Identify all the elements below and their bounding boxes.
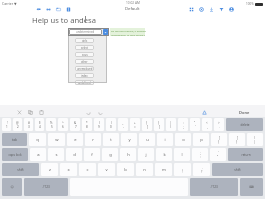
button[interactable]: return [228,148,263,161]
button[interactable]: b [117,163,134,176]
staticText: caps lock [8,153,22,157]
button[interactable]: Expand list [103,29,108,35]
staticText: other [81,60,88,64]
button[interactable]: ; [192,148,208,161]
button[interactable]: x [60,163,77,176]
button[interactable]: Copy [27,109,34,116]
button[interactable]: unemployed [75,66,94,71]
button[interactable]: _ [118,118,128,131]
button[interactable]: p [193,133,209,146]
button[interactable]: + [130,118,140,131]
staticText: r [92,137,94,143]
button[interactable]: Paste [38,109,45,116]
button[interactable]: u [139,133,155,146]
button[interactable]: Bookmarks [65,6,72,13]
button[interactable]: ^ [58,118,68,131]
staticText: d [73,152,76,158]
button[interactable]: Done [239,110,250,115]
button[interactable]: z [41,163,58,176]
button[interactable]: l [174,148,190,161]
button[interactable]: # [24,118,33,131]
button[interactable]: > [214,118,224,131]
button[interactable]: r [85,133,101,146]
button[interactable]: Grid [188,6,195,13]
button[interactable]: shift [2,163,39,176]
button[interactable]: girls [75,38,94,43]
button[interactable]: e [67,133,83,146]
button[interactable]: j [138,148,154,161]
button[interactable]: ) [106,118,116,131]
button[interactable]: d [66,148,82,161]
button[interactable]: & [70,118,80,131]
staticText: tab [12,138,17,142]
button[interactable]: ( [94,118,104,131]
button[interactable]: delete [226,118,263,131]
button[interactable]: y [121,133,137,146]
button[interactable]: i [157,133,173,146]
button[interactable]: a [30,148,46,161]
button[interactable]: } [154,118,164,131]
staticText: u [146,137,149,143]
button[interactable]: { [142,118,152,131]
button[interactable]: undetermined [69,29,108,35]
button[interactable]: tab [2,133,27,146]
button[interactable]: ' [210,148,226,161]
button[interactable]: ! [2,118,11,131]
button[interactable]: g [102,148,118,161]
button[interactable]: caps lock [2,148,28,161]
button[interactable]: Cut [16,109,23,116]
button[interactable]: shift [212,163,263,176]
button[interactable]: " [190,118,200,131]
staticText: w [55,137,59,143]
button[interactable]: @ [13,118,22,131]
button[interactable]: h [120,148,136,161]
button[interactable]: Undo [85,109,92,116]
button[interactable]: other [75,59,94,64]
button[interactable]: Folder [55,6,62,13]
button[interactable]: [ [211,133,227,146]
button[interactable]: .?123 [190,178,238,196]
button[interactable]: m [155,163,172,176]
button[interactable]: Back [35,6,42,13]
button[interactable]: sous [75,52,94,57]
button[interactable]: $ [35,118,44,131]
button[interactable]: Redo [97,109,104,116]
button[interactable]: f [84,148,100,161]
staticText: n [143,167,146,173]
staticText: } [158,121,160,125]
staticText: } [236,140,238,144]
button[interactable]: v [98,163,115,176]
button[interactable]: Account [228,6,235,13]
button[interactable]: , [174,163,191,176]
button[interactable]: ] [229,133,245,146]
button[interactable]: < [202,118,212,131]
button[interactable]: Forward [45,6,52,13]
button[interactable]: | [166,118,176,131]
button[interactable]: * [82,118,92,131]
button[interactable]: w [48,133,65,146]
button[interactable]: Filter [218,6,225,13]
button[interactable]: Download [208,6,215,13]
button[interactable]: undefined [75,80,94,85]
button[interactable]: ⌨ [240,178,263,196]
button[interactable]: Format [201,109,208,116]
button[interactable]: \ [247,133,263,146]
button[interactable]: : [178,118,188,131]
button[interactable]: % [46,118,56,131]
button[interactable]: n [136,163,153,176]
button[interactable]: select [75,45,94,50]
button[interactable]: o [175,133,191,146]
button[interactable]: c [79,163,96,176]
staticText: y [128,137,131,143]
button[interactable]: index [75,73,94,78]
button[interactable]: s [48,148,64,161]
button[interactable]: t [103,133,119,146]
button[interactable]: ☺ [2,178,22,196]
button[interactable]: . [193,163,210,176]
button[interactable]: k [156,148,172,161]
staticText: girls [82,39,88,43]
button[interactable]: .?123 [24,178,68,196]
button[interactable]: Settings [198,6,205,13]
button[interactable]: q [29,133,46,146]
